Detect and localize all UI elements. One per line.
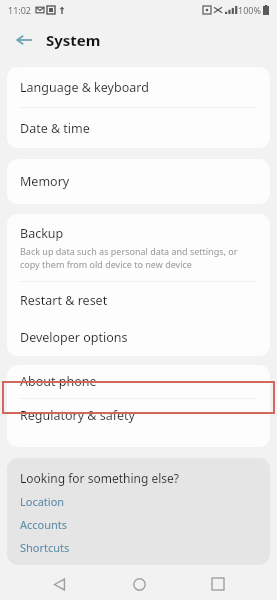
staticText: Back up data such as personal data and s…: [20, 245, 238, 257]
button[interactable]: Home: [119, 568, 159, 600]
staticText: About phone: [20, 373, 97, 390]
staticText: 100%: [238, 4, 261, 16]
button[interactable]: Accounts: [20, 517, 68, 532]
button[interactable]: Recent apps: [198, 568, 238, 600]
staticText: Memory: [20, 173, 70, 190]
staticText: Language & keyboard: [20, 79, 149, 96]
button[interactable]: Memory: [7, 159, 270, 204]
button[interactable]: About phone: [7, 365, 270, 398]
button[interactable]: Developer options: [7, 319, 270, 356]
button[interactable]: Language & keyboard: [7, 67, 270, 107]
staticText: Shortcuts: [20, 540, 70, 555]
staticText: copy them from old device to new device: [20, 258, 192, 270]
staticText: Developer options: [20, 329, 128, 346]
button[interactable]: Shortcuts: [20, 540, 70, 555]
staticText: Restart & reset: [20, 292, 108, 309]
button[interactable]: Back: [12, 28, 36, 52]
button[interactable]: Backup: [7, 214, 270, 281]
button[interactable]: Back: [39, 568, 79, 600]
staticText: Location: [20, 494, 65, 509]
staticText: System: [46, 30, 101, 50]
button[interactable]: Regulatory & safety: [7, 399, 270, 432]
staticText: Regulatory & safety: [20, 407, 135, 424]
staticText: 11:02: [8, 4, 32, 16]
staticText: Looking for something else?: [20, 470, 180, 486]
staticText: Accounts: [20, 517, 68, 532]
button[interactable]: Location: [20, 494, 65, 509]
button[interactable]: Date & time: [7, 108, 270, 148]
staticText: Backup: [20, 225, 64, 242]
button[interactable]: Restart & reset: [7, 282, 270, 319]
staticText: Date & time: [20, 120, 90, 137]
